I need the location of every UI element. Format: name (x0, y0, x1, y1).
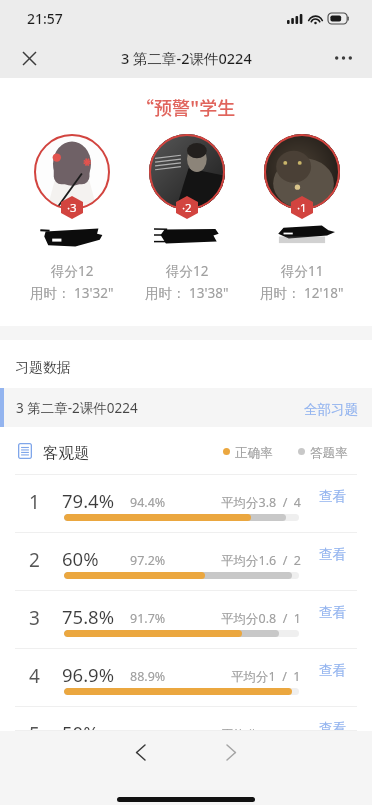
button[interactable]: 查看 (319, 488, 346, 505)
button[interactable]: Student avatar (149, 134, 225, 210)
staticText: 用时： 12'18" (260, 284, 344, 302)
staticText: 客观题 (43, 443, 90, 463)
staticText: 90.0% (130, 726, 166, 731)
staticText: 答题率 (310, 445, 348, 461)
staticText: 全部习题 (304, 401, 358, 418)
staticText: 平均分3.8 / 4 (221, 494, 301, 511)
staticText: 得分12 (166, 262, 209, 280)
staticText: 21:57 (27, 9, 63, 28)
button[interactable]: Forward (209, 731, 253, 774)
button[interactable]: Student avatar (34, 134, 110, 210)
button[interactable]: 2 (0, 533, 372, 591)
staticText: 3 第二章-2课件0224 (16, 399, 138, 417)
staticText: 75.8% (62, 604, 115, 629)
button[interactable]: Close (14, 43, 44, 73)
staticText: 5 (29, 721, 40, 731)
staticText: 得分11 (281, 262, 324, 280)
staticText: 3 第二章-2课件0224 (121, 48, 252, 68)
button[interactable]: 查看 (319, 546, 346, 563)
button[interactable]: 全部习题 (288, 391, 372, 424)
staticText: ·2 (182, 200, 192, 216)
staticText: 96.9% (62, 662, 115, 687)
button[interactable]: 3 (0, 591, 372, 649)
staticText: 查看 (319, 604, 346, 621)
staticText: 97.2% (130, 552, 166, 569)
staticText: 4 (29, 663, 40, 689)
staticText: 60% (62, 546, 99, 571)
staticText: 50% (62, 720, 99, 731)
button[interactable]: More options (328, 43, 358, 73)
staticText: 平均分0.8 / 1 (221, 610, 301, 627)
button[interactable]: 查看 (319, 662, 346, 679)
staticText: “预警"学生 (136, 94, 236, 120)
button[interactable]: Student avatar (264, 134, 340, 210)
button[interactable]: 查看 (319, 720, 346, 731)
staticText: 3 (29, 605, 40, 631)
button[interactable]: 1 (0, 475, 372, 533)
staticText: ·3 (67, 200, 77, 216)
staticText: 得分12 (51, 262, 94, 280)
staticText: 用时： 13'38" (145, 284, 229, 302)
staticText: 查看 (319, 662, 346, 679)
button[interactable]: 5 (0, 707, 372, 731)
staticText: 查看 (319, 720, 346, 731)
staticText: 平均分1 / 1 (231, 668, 301, 685)
staticText: 88.9% (130, 668, 166, 685)
button[interactable]: 4 (0, 649, 372, 707)
staticText: 用时： 13'32" (30, 284, 114, 302)
staticText: 查看 (319, 488, 346, 505)
staticText: 94.4% (130, 494, 166, 511)
staticText: ·1 (297, 200, 307, 216)
staticText: 1 (29, 489, 40, 515)
staticText: 正确率 (235, 445, 273, 461)
staticText: 查看 (319, 546, 346, 563)
staticText: 91.7% (130, 610, 166, 627)
button[interactable]: Back (118, 731, 162, 774)
staticText: 平均分0.5 / 1 (221, 726, 301, 731)
staticText: 2 (29, 547, 40, 573)
staticText: 习题数据 (15, 359, 71, 377)
staticText: 平均分1.6 / 2 (221, 552, 301, 569)
staticText: 79.4% (62, 488, 115, 513)
button[interactable]: 查看 (319, 604, 346, 621)
